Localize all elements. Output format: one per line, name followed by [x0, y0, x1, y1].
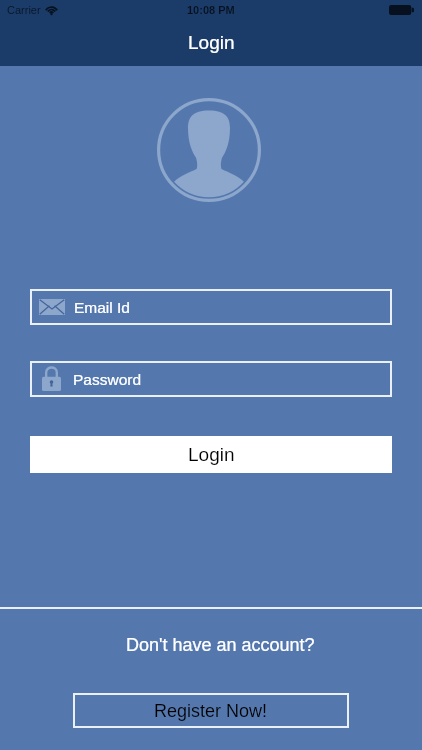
staticText: Carrier: [7, 4, 41, 16]
staticText: 10:08 PM: [187, 4, 235, 16]
button[interactable]: Email Id: [30, 289, 392, 325]
staticText: Email Id: [74, 299, 130, 316]
button[interactable]: Register Now!: [73, 693, 349, 728]
button[interactable]: Login: [30, 436, 392, 473]
staticText: Register Now!: [154, 701, 268, 721]
staticText: Don't have an account?: [126, 635, 315, 655]
button[interactable]: Password: [30, 361, 392, 397]
staticText: Password: [73, 371, 142, 388]
staticText: Login: [188, 32, 235, 53]
staticText: Login: [188, 444, 235, 465]
